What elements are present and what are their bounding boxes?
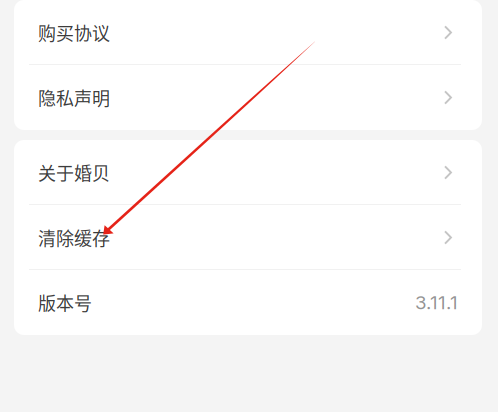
staticText: 版本号: [38, 289, 92, 316]
button[interactable]: 关于婚贝: [14, 140, 482, 205]
staticText: 关于婚贝: [38, 159, 110, 186]
staticText: 清除缓存: [38, 224, 110, 251]
staticText: 隐私声明: [38, 84, 110, 111]
button[interactable]: 隐私声明: [14, 65, 482, 130]
staticText: 购买协议: [38, 19, 110, 46]
button[interactable]: 清除缓存: [14, 205, 482, 270]
staticText: 3.11.1: [415, 291, 458, 314]
button[interactable]: 购买协议: [14, 0, 482, 65]
